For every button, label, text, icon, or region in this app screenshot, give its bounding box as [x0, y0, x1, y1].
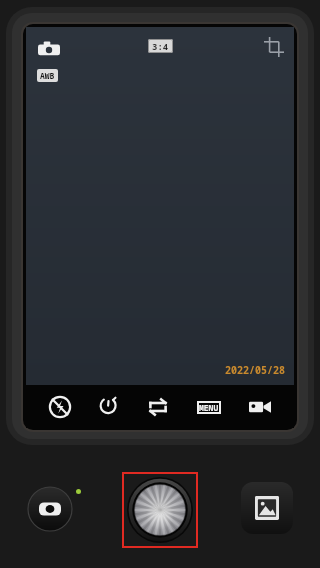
button[interactable]: Photo mode — [38, 38, 60, 60]
button[interactable]: 3:4 — [152, 40, 169, 52]
button[interactable]: Camera mode — [28, 487, 72, 531]
button[interactable]: Photo mode — [26, 27, 294, 385]
button[interactable]: Shutter — [122, 472, 198, 548]
button[interactable]: Flash off — [45, 392, 75, 422]
staticText: AWB — [40, 70, 55, 81]
button[interactable]: Video mode — [245, 392, 275, 422]
button[interactable]: Gallery — [241, 482, 293, 534]
button[interactable]: Switch camera — [143, 392, 173, 422]
button[interactable]: Menu — [192, 392, 226, 422]
staticText: 2022/05/28 — [225, 363, 285, 377]
button[interactable]: AWB — [40, 70, 55, 81]
button[interactable]: Self timer off — [94, 392, 124, 422]
staticText: 3:4 — [152, 40, 169, 52]
staticText: MENU — [199, 402, 219, 413]
button[interactable]: Crop — [264, 37, 284, 57]
